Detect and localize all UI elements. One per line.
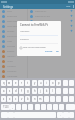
button[interactable]: Display [0,29,27,34]
button[interactable] [59,104,64,110]
button[interactable]: Cafe-Guest [28,29,75,34]
staticText: , [12,105,13,109]
button[interactable] [63,96,68,102]
button[interactable]: Storage [0,44,27,49]
button[interactable]: Location [0,64,27,69]
button[interactable]: Data usage [0,19,27,24]
button[interactable]: u [38,80,43,86]
button[interactable]: Battery [0,49,27,54]
button[interactable] [41,104,46,110]
button[interactable] [69,96,74,102]
button[interactable] [28,104,33,110]
button[interactable]: k [44,88,49,94]
button[interactable] [16,104,21,110]
button[interactable]: r [19,80,24,86]
button[interactable]: Memory [0,54,27,59]
button[interactable]: Accounts [0,69,27,74]
staticText: ADD [66,5,71,8]
button[interactable]: FreeWifi-Pt-5G [28,14,75,19]
button[interactable]: f [19,88,24,94]
button[interactable]: FreeWifi-Pt [28,9,75,14]
button[interactable]: h [32,88,37,94]
button[interactable]: q [1,80,6,86]
button[interactable] [50,96,55,102]
button[interactable]: Bluetooth [0,14,27,19]
button[interactable]: n [32,96,37,102]
button[interactable]: m [38,96,43,102]
button[interactable]: CANCEL [44,49,54,54]
button[interactable]: w [7,80,12,86]
button[interactable]: o [50,80,55,86]
staticText: Sound & notif [7,35,22,38]
button[interactable]: Save account information [20,46,46,49]
button[interactable]: j [38,88,43,94]
button[interactable] [53,104,58,110]
button[interactable]: Left [63,112,69,118]
button[interactable]: c [13,96,18,102]
button[interactable]: ?123 [1,104,10,110]
button[interactable]: . [57,112,63,118]
button[interactable] [35,104,40,110]
staticText: Accounts [7,70,17,73]
button[interactable] [69,80,74,86]
button[interactable]: b [25,96,30,102]
button[interactable]: Symbols [1,112,8,118]
button[interactable]: y [32,80,37,86]
button[interactable]: z [1,96,6,102]
staticText: s [9,89,11,93]
button[interactable]: Sound & notif [0,34,27,39]
button[interactable] [44,96,49,102]
staticText: Wi-Fi [7,10,13,13]
button[interactable]: e [13,80,18,86]
button[interactable]: Wi-Fi [0,9,27,14]
button[interactable] [69,88,74,94]
button[interactable]: p [56,80,61,86]
button[interactable]: a [1,88,6,94]
button[interactable] [47,104,52,110]
button[interactable] [22,104,27,110]
button[interactable]: d [13,88,18,94]
button[interactable]: g [25,88,30,94]
staticText: h [34,89,36,93]
staticText: v [21,97,23,101]
staticText: Location [7,65,16,68]
button[interactable]: i [44,80,49,86]
button[interactable] [56,96,61,102]
button[interactable] [56,88,61,94]
button[interactable]: More settings [0,24,27,29]
button[interactable]: v [19,96,24,102]
staticText: Storage [7,45,15,48]
staticText: p [58,81,60,85]
button[interactable]: t [25,80,30,86]
staticText: g [27,89,29,93]
button[interactable]: , [10,104,15,110]
button[interactable]: Users [0,59,27,64]
button[interactable]: x [7,96,12,102]
button[interactable] [63,88,68,94]
button[interactable]: s [7,88,12,94]
staticText: Apps [7,40,13,43]
button[interactable]: Guest Network [28,19,75,24]
staticText: ?123 [3,105,9,109]
staticText: Battery [7,50,15,53]
button[interactable] [63,80,68,86]
staticText: Guest Network [35,20,51,23]
staticText: f [21,89,22,93]
staticText: o [52,81,54,85]
button[interactable]: Apps [0,39,27,44]
button[interactable]: Language [0,74,27,79]
staticText: Office-WLAN [35,25,49,28]
staticText: Connect to FreeWifi-Pt [20,23,48,27]
button[interactable]: Backspace [66,104,75,110]
button[interactable]: l [50,88,55,94]
button[interactable]: Office-WLAN [28,24,75,29]
staticText: Language [7,75,18,78]
button[interactable]: OK [55,49,60,54]
button[interactable]: Emoji [8,112,14,118]
staticText: d [15,89,17,93]
staticText: u [40,81,42,85]
staticText: Password [20,38,29,41]
button[interactable]: Right [69,112,74,118]
